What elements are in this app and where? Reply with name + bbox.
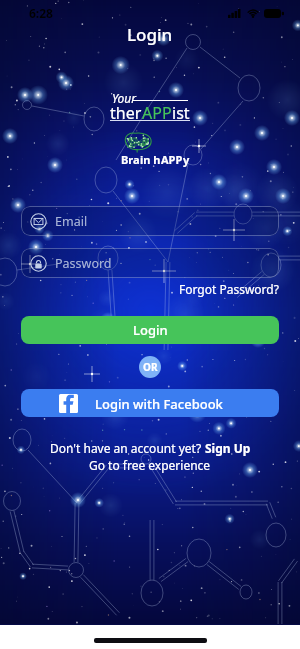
staticText: ist [172, 102, 190, 124]
staticText: OR [143, 360, 158, 374]
staticText: Don't have an account yet? [50, 440, 205, 456]
staticText: APP [161, 152, 183, 167]
button[interactable]: Sign Up [205, 440, 251, 456]
button[interactable]: Login with Facebook [21, 389, 279, 417]
button[interactable]: Forgot Password? [179, 281, 279, 297]
staticText: Your [112, 90, 136, 106]
staticText: in h [140, 152, 161, 167]
button[interactable]: Password [21, 248, 279, 278]
button[interactable]: Login [21, 316, 279, 344]
staticText: APP [142, 102, 172, 124]
button[interactable]: OR [139, 356, 161, 378]
staticText: Bra [121, 152, 140, 167]
staticText: Email [55, 213, 88, 230]
staticText: y [183, 152, 190, 167]
staticText: ther [110, 102, 142, 124]
staticText: Password [55, 255, 112, 272]
staticText: Login [133, 321, 168, 339]
button[interactable]: Go to free experience [89, 457, 211, 473]
staticText: Login with Facebook [95, 395, 223, 413]
button[interactable]: Email [21, 206, 279, 236]
staticText: Login [127, 23, 173, 46]
staticText: 6:28 [29, 5, 53, 21]
